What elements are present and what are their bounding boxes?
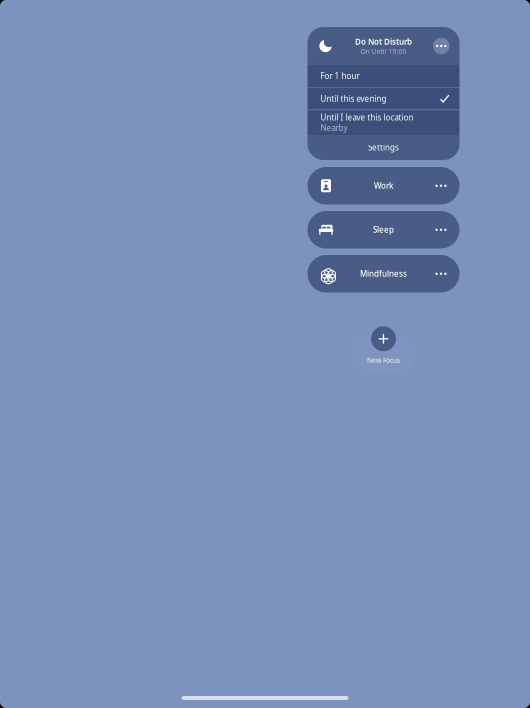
staticText: On Until 19:00 <box>360 47 406 56</box>
staticText: Settings <box>368 142 399 153</box>
button[interactable]: Settings <box>307 135 459 160</box>
staticText: For 1 hour <box>320 71 359 81</box>
staticText: Until I leave this location <box>320 112 413 123</box>
button[interactable]: Until this evening <box>307 88 459 110</box>
button[interactable]: For 1 hour <box>307 65 459 87</box>
button[interactable]: Work <box>307 167 459 204</box>
button[interactable]: Mindfulness <box>307 255 459 292</box>
staticText: Do Not Disturb <box>355 36 412 47</box>
button[interactable]: Sleep <box>307 211 459 248</box>
button[interactable]: New Focus <box>348 321 418 369</box>
staticText: Work <box>374 180 393 191</box>
staticText: Mindfulness <box>360 268 407 279</box>
staticText: Nearby <box>320 123 347 133</box>
button[interactable]: Until I leave this location <box>307 110 459 135</box>
staticText: New Focus <box>367 356 400 365</box>
staticText: Sleep <box>373 224 394 235</box>
button[interactable]: Do Not Disturb <box>307 27 459 65</box>
staticText: Until this evening <box>320 93 386 104</box>
